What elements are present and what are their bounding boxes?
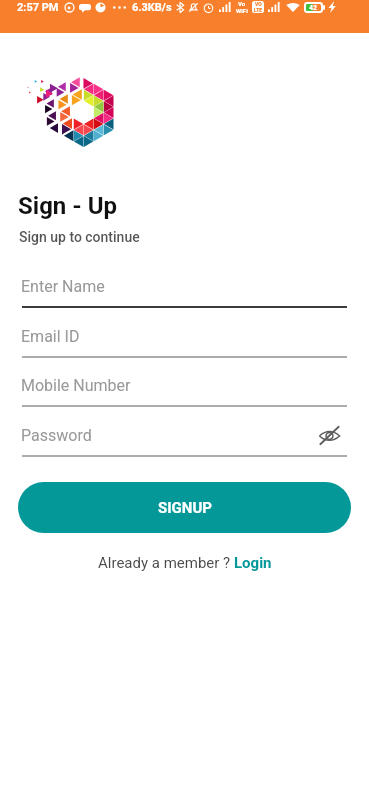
button[interactable]: SIGNUP xyxy=(18,482,351,533)
staticText: Password xyxy=(21,426,92,445)
staticText: Sign - Up xyxy=(18,192,117,220)
staticText: Email ID xyxy=(21,327,80,346)
staticText: LTE xyxy=(254,7,263,13)
button[interactable]: Login xyxy=(234,554,272,572)
button[interactable]: Email ID xyxy=(0,324,369,359)
staticText: SIGNUP xyxy=(158,499,212,517)
staticText: 6.3KB/s xyxy=(132,1,172,14)
staticText: Mobile Number xyxy=(21,376,131,395)
staticText: Vo xyxy=(238,0,246,7)
button[interactable]: Show password xyxy=(318,424,341,447)
staticText: 2:57 PM xyxy=(17,1,59,14)
staticText: WiFi xyxy=(236,7,248,14)
staticText: Sign up to continue xyxy=(19,229,140,245)
button[interactable]: Mobile Number xyxy=(0,373,369,408)
staticText: 42 xyxy=(309,4,318,11)
staticText: Enter Name xyxy=(21,277,105,296)
staticText: Login xyxy=(234,554,272,572)
staticText: VO xyxy=(255,1,262,7)
button[interactable]: Password xyxy=(0,423,369,458)
staticText: Already a member ? xyxy=(98,554,234,572)
button[interactable]: Enter Name xyxy=(0,274,369,309)
